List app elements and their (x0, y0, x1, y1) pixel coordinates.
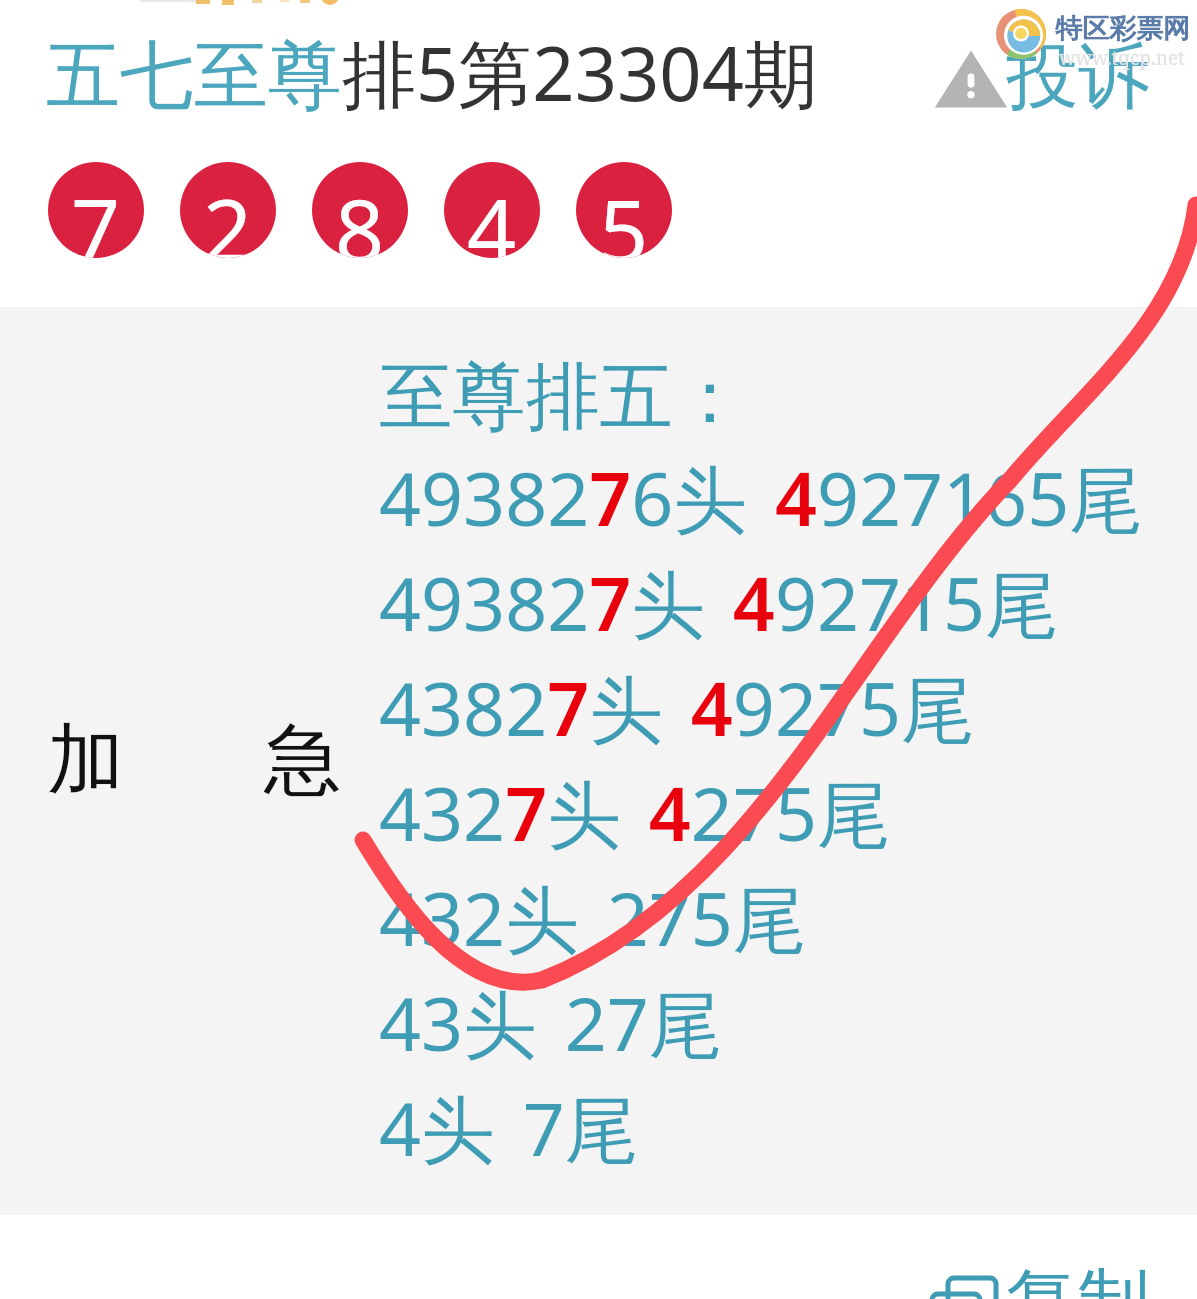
button[interactable]: 投诉 (938, 28, 1154, 119)
staticText: 8 (335, 170, 385, 258)
staticText: 2 (203, 170, 253, 258)
button[interactable]: 7 (48, 162, 144, 258)
button[interactable]: 复制 (926, 1258, 1150, 1299)
button[interactable]: 2 (180, 162, 276, 258)
staticText: 43头 27尾 (379, 972, 723, 1077)
staticText: 五七至尊排5第23304期 (46, 22, 818, 123)
staticText: 4938276头 4927165尾 (379, 447, 1143, 552)
button[interactable]: 8 (312, 162, 408, 258)
staticText: 复制 (1006, 1258, 1150, 1299)
staticText: 急 (264, 712, 341, 809)
staticText: 5 (599, 170, 649, 258)
staticText: 493827头 492715尾 (379, 552, 1059, 657)
staticText: 4头 7尾 (379, 1077, 639, 1182)
staticText: 43827头 49275尾 (379, 657, 975, 762)
staticText: 至尊排五： (379, 351, 747, 456)
staticText: 4 (467, 170, 517, 258)
staticText: 加 (47, 712, 124, 809)
button[interactable]: 5 (576, 162, 672, 258)
staticText: 7 (71, 170, 121, 258)
staticText: 4327头 4275尾 (379, 762, 891, 867)
button[interactable]: 4 (444, 162, 540, 258)
staticText: 投诉 (1006, 32, 1150, 123)
staticText: www.tqcp.net (1059, 45, 1185, 71)
staticText: 432头 275尾 (379, 867, 807, 972)
staticText: 特区彩票网 (1055, 12, 1190, 46)
